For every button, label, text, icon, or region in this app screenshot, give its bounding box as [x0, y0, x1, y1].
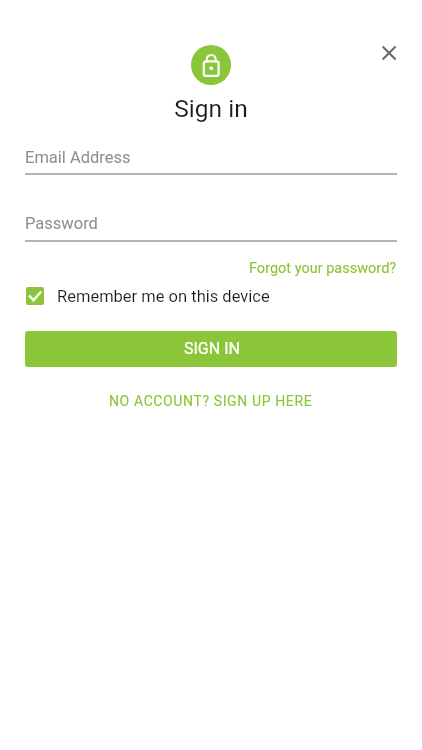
staticText: NO ACCOUNT? SIGN UP HERE	[109, 393, 313, 409]
staticText: Sign in	[0, 94, 422, 123]
button[interactable]: Close	[371, 35, 407, 71]
button[interactable]: Password	[25, 209, 397, 241]
staticText: SIGN IN	[184, 339, 240, 358]
button[interactable]: SIGN IN	[25, 331, 397, 367]
staticText: Forgot your password?	[249, 260, 397, 277]
button[interactable]: Email Address	[25, 143, 397, 175]
staticText: Password	[25, 214, 98, 233]
button[interactable]: NO ACCOUNT? SIGN UP HERE	[100, 390, 322, 412]
staticText: Remember me on this device	[57, 287, 270, 306]
staticText: Email Address	[25, 148, 131, 167]
button[interactable]: Remember me on this device	[25, 284, 275, 308]
button[interactable]: Forgot your password?	[237, 255, 397, 279]
